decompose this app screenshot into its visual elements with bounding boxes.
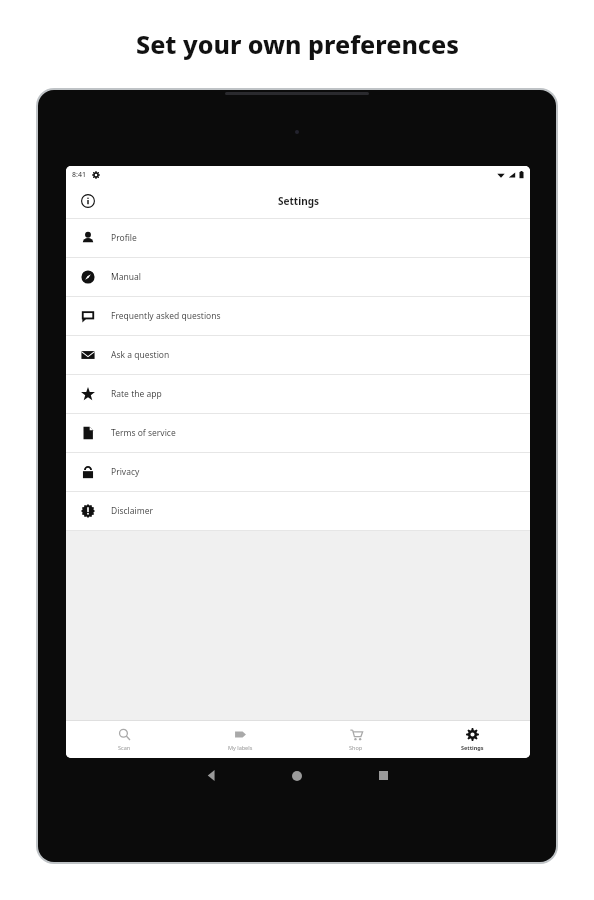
- staticText: Settings: [461, 744, 484, 751]
- button[interactable]: Information: [74, 187, 102, 215]
- button[interactable]: Privacy: [66, 453, 530, 491]
- button[interactable]: Rate the app: [66, 375, 530, 413]
- staticText: Frequently asked questions: [111, 310, 221, 322]
- button[interactable]: Profile: [66, 219, 530, 257]
- staticText: 8:41: [72, 170, 86, 180]
- staticText: Ask a question: [111, 349, 170, 361]
- staticText: Disclaimer: [111, 505, 153, 517]
- staticText: Scan: [118, 744, 131, 751]
- staticText: Terms of service: [111, 427, 176, 439]
- staticText: Profile: [111, 232, 137, 244]
- staticText: Shop: [349, 744, 363, 751]
- button[interactable]: Frequently asked questions: [66, 297, 530, 335]
- other: Home: [292, 771, 302, 781]
- staticText: Rate the app: [111, 388, 162, 400]
- button[interactable]: My labels: [182, 720, 298, 758]
- button[interactable]: Terms of service: [66, 414, 530, 452]
- button[interactable]: Settings: [414, 720, 530, 758]
- other: Back: [206, 770, 217, 781]
- button[interactable]: Shop: [298, 720, 414, 758]
- button[interactable]: Disclaimer: [66, 492, 530, 530]
- staticText: My labels: [228, 744, 253, 751]
- button[interactable]: Scan: [66, 720, 182, 758]
- staticText: Manual: [111, 271, 141, 283]
- button[interactable]: Manual: [66, 258, 530, 296]
- staticText: Privacy: [111, 466, 140, 478]
- button[interactable]: Ask a question: [66, 336, 530, 374]
- staticText: Settings: [278, 194, 319, 208]
- staticText: Set your own preferences: [136, 27, 459, 61]
